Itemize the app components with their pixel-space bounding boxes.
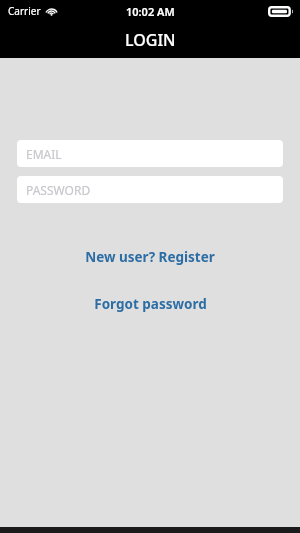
button[interactable]: PASSWORD bbox=[17, 176, 283, 203]
staticText: LOGIN bbox=[125, 29, 176, 51]
staticText: New user? Register bbox=[85, 248, 215, 266]
staticText: 10:02 AM bbox=[126, 4, 175, 19]
button[interactable]: New user? Register bbox=[0, 245, 300, 269]
button[interactable]: Forgot password bbox=[0, 292, 300, 316]
staticText: Carrier bbox=[8, 4, 41, 18]
staticText: EMAIL bbox=[26, 146, 62, 162]
staticText: PASSWORD bbox=[26, 182, 91, 198]
staticText: Forgot password bbox=[94, 295, 207, 313]
button[interactable]: EMAIL bbox=[17, 140, 283, 167]
